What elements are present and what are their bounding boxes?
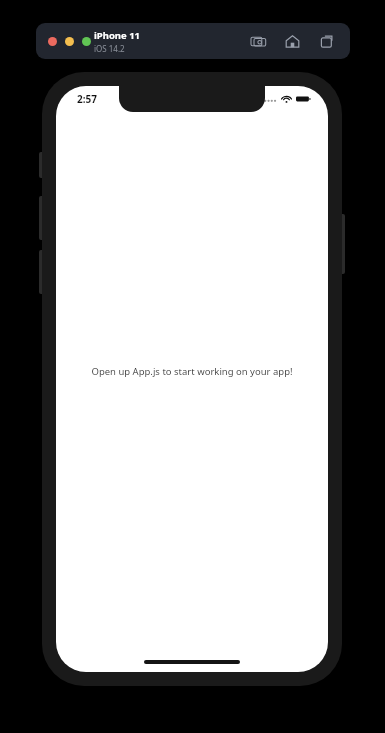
button[interactable]: Minimize [65, 37, 74, 46]
staticText: iPhone 11 [94, 29, 141, 42]
staticText: Open up App.js to start working on your … [91, 365, 293, 378]
staticText: iOS 14.2 [94, 43, 125, 54]
button[interactable]: Rotate [316, 31, 336, 51]
button[interactable]: Close [48, 37, 57, 46]
button[interactable]: Home [282, 31, 302, 51]
button[interactable]: Maximize [82, 37, 91, 46]
button[interactable]: Screenshot [248, 31, 268, 51]
staticText: 2:57 [77, 92, 97, 106]
